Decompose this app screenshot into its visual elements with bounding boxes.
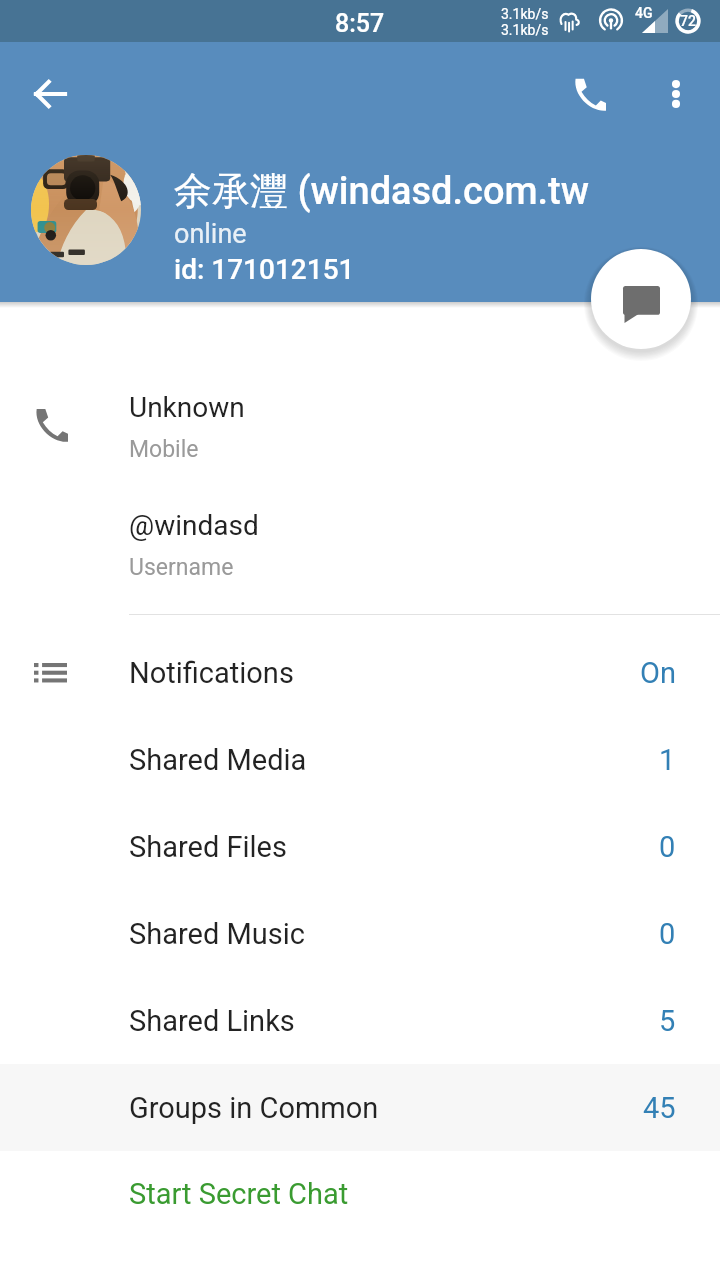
staticText: Shared Media [129,743,307,777]
staticText: 5 [659,1004,676,1038]
staticText: Notifications [129,656,294,690]
staticText: 0 [659,917,676,951]
staticText: Username [129,554,234,581]
staticText: 0 [659,830,676,864]
staticText: 72 [680,13,696,29]
button[interactable]: Start Secret Chat [0,1151,720,1237]
staticText: 3.1kb/s [501,22,549,38]
staticText: Shared Files [129,830,287,864]
button[interactable]: Shared Files [0,803,720,890]
button[interactable]: Profile photo [31,155,141,265]
staticText: id: 171012151 [174,253,355,286]
button[interactable]: Unknown [0,370,720,480]
staticText: Groups in Common [129,1091,379,1125]
button[interactable]: @windasd [0,488,720,598]
button[interactable]: Shared Music [0,890,720,977]
staticText: Mobile [129,436,199,463]
staticText: 4G [635,5,653,21]
button[interactable]: Back [26,70,74,118]
staticText: 8:57 [335,9,385,38]
staticText: Shared Links [129,1004,295,1038]
staticText: Unknown [129,391,245,424]
staticText: 45 [643,1091,676,1125]
staticText: 余承灃 (windasd.com.tw [174,167,589,215]
staticText: Start Secret Chat [129,1177,349,1211]
button[interactable]: Call [566,70,614,118]
staticText: 1 [659,743,676,777]
button[interactable]: Groups in Common [0,1064,720,1151]
staticText: 3.1kb/s [501,6,549,22]
staticText: @windasd [129,509,259,542]
button[interactable]: Send message [591,249,691,349]
staticText: Shared Music [129,917,305,951]
staticText: On [640,656,676,690]
staticText: online [174,218,247,250]
button[interactable]: More options [652,70,700,118]
button[interactable]: Shared Links [0,977,720,1064]
button[interactable]: Notifications [0,629,720,716]
button[interactable]: Shared Media [0,716,720,803]
